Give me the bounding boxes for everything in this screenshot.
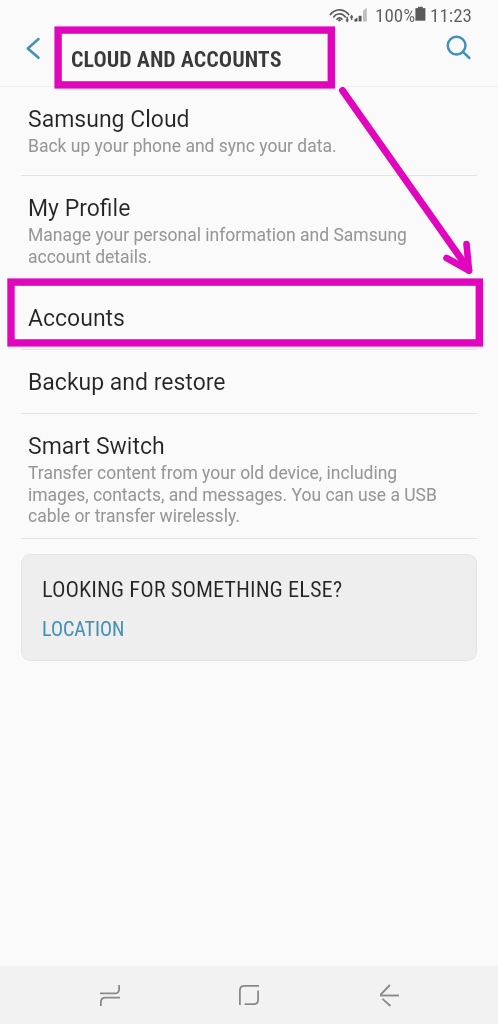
staticText: Transfer content from your old device, i… — [28, 463, 440, 526]
button[interactable]: Back — [361, 967, 417, 1023]
button[interactable]: Recent apps — [82, 967, 138, 1023]
staticText: Manage your personal information and Sam… — [28, 225, 440, 267]
staticText: My Profile — [28, 195, 131, 222]
button[interactable]: Samsung Cloud — [0, 87, 498, 175]
staticText: Samsung Cloud — [28, 106, 190, 133]
button[interactable]: Accounts — [0, 286, 498, 349]
staticText: 100% — [375, 4, 416, 26]
staticText: 11:23 — [430, 4, 472, 26]
button[interactable]: Smart Switch — [0, 414, 498, 538]
button[interactable]: Backup and restore — [0, 350, 498, 413]
staticText: Backup and restore — [28, 369, 226, 396]
staticText: Smart Switch — [28, 433, 165, 460]
button[interactable]: My Profile — [0, 176, 498, 285]
staticText: CLOUD AND ACCOUNTS — [71, 47, 282, 73]
staticText: LOCATION — [42, 617, 125, 640]
button[interactable]: LOOKING FOR SOMETHING ELSE? — [21, 554, 477, 661]
button[interactable]: Navigate up — [0, 30, 56, 87]
button[interactable]: Home — [221, 967, 277, 1023]
staticText: Back up your phone and sync your data. — [28, 136, 440, 157]
staticText: Accounts — [28, 305, 125, 332]
staticText: LOOKING FOR SOMETHING ELSE? — [42, 576, 343, 602]
button[interactable]: Search — [442, 30, 498, 87]
